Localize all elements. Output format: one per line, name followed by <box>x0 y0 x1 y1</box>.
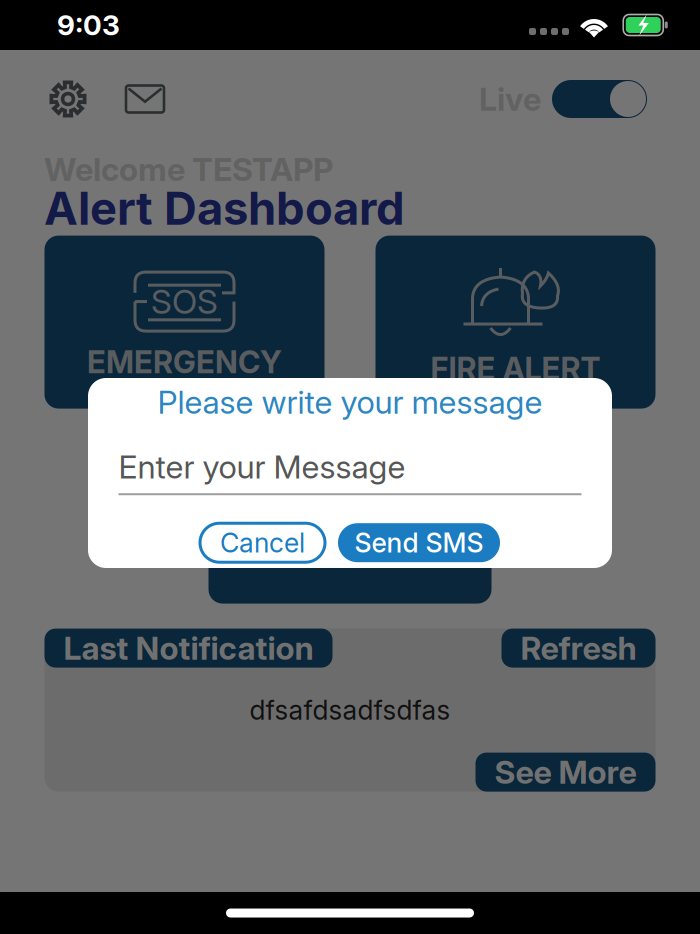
button[interactable]: Live mode toggle, on <box>552 74 647 124</box>
button[interactable]: Send SMS <box>338 523 500 562</box>
staticText: SEND SMS <box>270 438 429 475</box>
button[interactable]: See More <box>475 753 655 792</box>
staticText: FIRE ALERT <box>430 350 600 387</box>
button[interactable]: Settings <box>37 68 99 130</box>
button[interactable]: FIRE ALERT <box>375 236 655 409</box>
button[interactable]: Last Notification <box>44 629 332 668</box>
button[interactable]: SEND SMS <box>208 426 491 604</box>
staticText: EMERGENCY <box>87 343 282 381</box>
staticText: See More <box>494 753 636 791</box>
staticText: Refresh <box>520 629 636 667</box>
button[interactable]: Messages <box>114 68 176 130</box>
staticText: Cancel <box>220 527 305 559</box>
staticText: Welcome TESTAPP <box>44 150 333 189</box>
button[interactable]: Cancel <box>200 523 325 562</box>
staticText: Last Notification <box>63 629 313 667</box>
staticText: Alert Dashboard <box>44 181 405 236</box>
staticText: Send SMS <box>354 527 483 559</box>
button[interactable]: Refresh <box>501 629 655 668</box>
staticText: SOS <box>151 281 218 322</box>
button[interactable]: SOS <box>44 236 324 409</box>
staticText: 9:03 <box>57 8 120 42</box>
staticText: Live <box>479 80 541 118</box>
staticText: dfsafdsadfsdfas <box>249 694 450 726</box>
staticText: Enter your Message <box>118 447 405 486</box>
staticText: Please write your message <box>157 383 542 421</box>
